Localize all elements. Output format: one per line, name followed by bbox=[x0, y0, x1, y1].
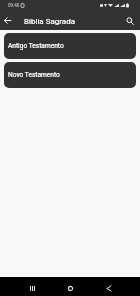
button[interactable]: Novo Testamento bbox=[4, 62, 136, 88]
button[interactable]: Back bbox=[0, 11, 15, 30]
staticText: 09:40 bbox=[8, 3, 20, 8]
button[interactable]: Recents bbox=[24, 280, 40, 296]
button[interactable]: Back bbox=[101, 280, 117, 296]
button[interactable]: Antigo Testamento bbox=[4, 33, 136, 59]
staticText: Antigo Testamento bbox=[8, 42, 64, 50]
staticText: Bíblia Sagrada bbox=[24, 17, 76, 26]
staticText: Novo Testamento bbox=[8, 71, 60, 79]
button[interactable]: Search bbox=[121, 11, 139, 30]
button[interactable]: Home bbox=[62, 280, 78, 296]
